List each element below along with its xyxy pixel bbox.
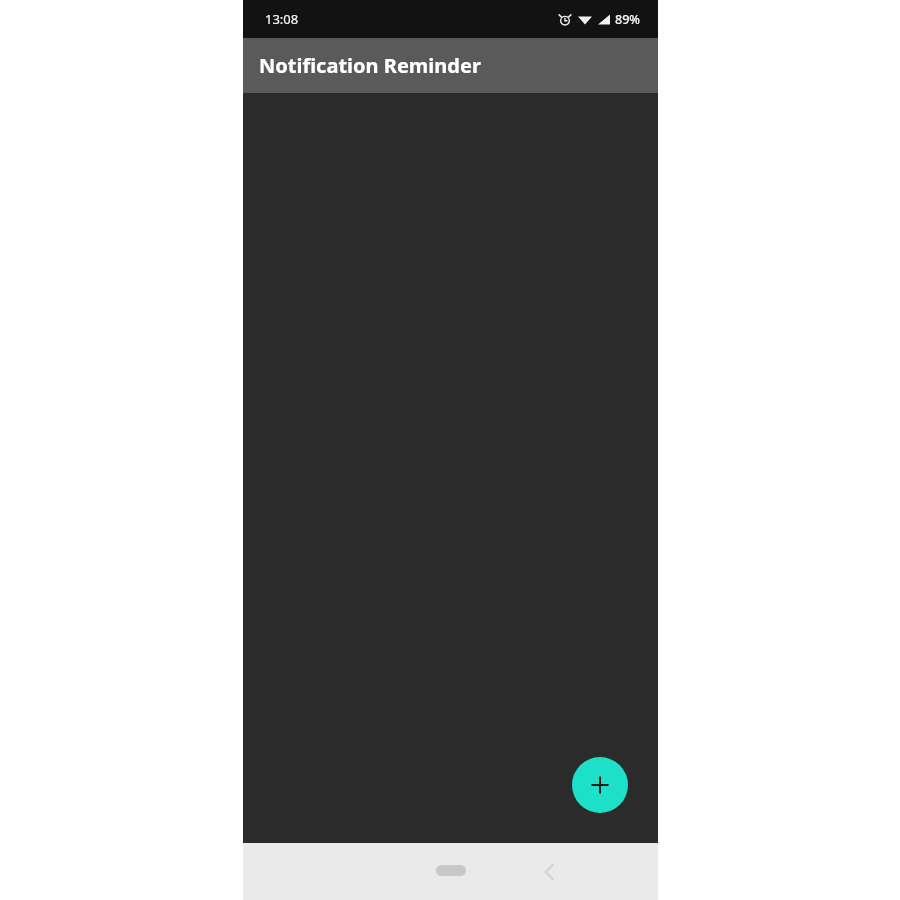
button[interactable]: Home xyxy=(436,865,466,876)
staticText: Notification Reminder xyxy=(259,52,481,79)
button[interactable]: Add reminder xyxy=(572,757,628,813)
staticText: 89% xyxy=(615,11,640,28)
staticText: 13:08 xyxy=(265,10,299,28)
button[interactable]: Back xyxy=(531,854,567,890)
